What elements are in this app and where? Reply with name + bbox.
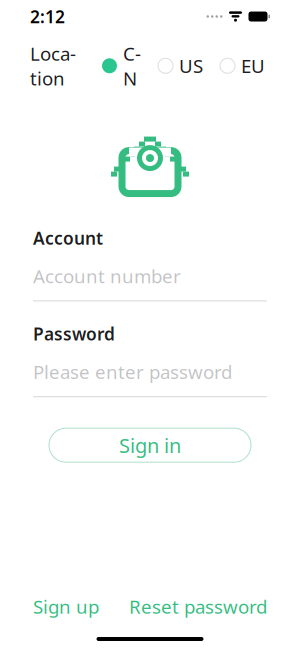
button[interactable]: EU — [220, 48, 265, 83]
button[interactable]: Sign up — [33, 594, 99, 619]
staticText: EU — [241, 53, 265, 78]
staticText: US — [179, 53, 203, 78]
staticText: 2:12 — [30, 5, 65, 28]
staticText: Reset password — [129, 594, 267, 619]
button[interactable]: Reset password — [129, 594, 267, 619]
staticText: Sign up — [33, 594, 99, 619]
button[interactable]: Sign in — [49, 428, 251, 462]
staticText: Please enter password — [33, 359, 232, 384]
staticText: Account number — [33, 264, 181, 288]
button[interactable]: CN — [102, 36, 141, 96]
staticText: Sign in — [119, 432, 181, 458]
staticText: Location — [30, 41, 76, 91]
staticText: Account — [33, 227, 103, 250]
staticText: Password — [33, 322, 115, 345]
staticText: CN — [123, 41, 141, 91]
button[interactable]: US — [158, 48, 203, 83]
